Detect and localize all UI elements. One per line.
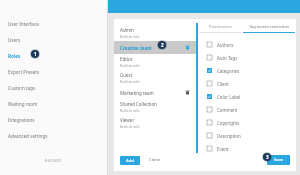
button[interactable]: Export Presets [0, 64, 107, 80]
button[interactable]: Tag access restriction [242, 24, 296, 33]
staticText: Authors [217, 42, 234, 48]
button[interactable]: Categories [198, 64, 296, 77]
staticText: Color Label [217, 94, 241, 100]
button[interactable]: Delete role [184, 89, 191, 96]
button[interactable]: Copyrights [198, 116, 296, 129]
button[interactable]: Editor [114, 54, 196, 70]
staticText: Permissions [209, 24, 232, 29]
button[interactable]: Add [120, 156, 140, 165]
staticText: Client [217, 81, 229, 87]
staticText: Categories [217, 68, 240, 74]
staticText: Marketing team [120, 90, 154, 96]
button[interactable]: Delete role [184, 44, 191, 51]
button[interactable]: Shared Collection [114, 99, 196, 115]
staticText: User Interface [8, 21, 39, 27]
staticText: Roles [8, 53, 21, 59]
staticText: Users [8, 37, 21, 43]
staticText: Description [217, 133, 241, 139]
button[interactable]: Clone [147, 156, 163, 164]
staticText: Tag access restriction [249, 24, 290, 29]
staticText: Built-in role [120, 79, 140, 84]
staticText: Editor [120, 56, 133, 62]
staticText: Built-in role [120, 124, 140, 129]
staticText: Guest [120, 72, 133, 78]
button[interactable]: Auto Tags [198, 51, 296, 64]
staticText: 1 [34, 51, 37, 57]
button[interactable]: Save [267, 155, 290, 165]
staticText: 2 [161, 42, 164, 48]
button[interactable]: Admin [114, 25, 196, 41]
staticText: Copyrights [217, 120, 240, 126]
button[interactable]: Roles [0, 48, 107, 64]
button[interactable]: Authors [198, 38, 296, 51]
button[interactable]: Marketing team [114, 86, 196, 99]
button[interactable]: Users [0, 32, 107, 48]
button[interactable]: Integrations [0, 112, 107, 128]
button[interactable]: Comment [198, 103, 296, 116]
staticText: Advanced settings [8, 133, 48, 139]
staticText: Integrations [8, 117, 35, 123]
staticText: Waiting room [8, 101, 38, 107]
staticText: Event [217, 146, 229, 152]
button[interactable]: Event [198, 142, 296, 155]
staticText: 8.0.0.3027 [45, 158, 62, 163]
staticText: Creative team [120, 45, 152, 51]
button[interactable]: Color Label [198, 90, 296, 103]
staticText: Add [126, 158, 134, 164]
staticText: Shared Collection [120, 101, 157, 107]
staticText: Comment [217, 107, 238, 113]
staticText: Admin [120, 27, 134, 33]
staticText: Built-in role [120, 63, 140, 68]
button[interactable]: Permissions [198, 24, 242, 33]
staticText: Built-in role [120, 108, 140, 113]
button[interactable]: Guest [114, 70, 196, 86]
button[interactable]: Custom tags [0, 80, 107, 96]
button[interactable]: Client [198, 77, 296, 90]
staticText: Export Presets [8, 69, 40, 75]
button[interactable]: Creative team [114, 41, 196, 54]
staticText: Custom tags [8, 85, 36, 91]
button[interactable]: Waiting room [0, 96, 107, 112]
button[interactable]: Advanced settings [0, 128, 107, 144]
staticText: Viewer [120, 117, 135, 123]
staticText: Built-in role [120, 34, 140, 39]
button[interactable]: User Interface [0, 16, 107, 32]
staticText: Auto Tags [217, 55, 238, 61]
staticText: Save [274, 157, 284, 163]
button[interactable]: Viewer [114, 115, 196, 131]
button[interactable]: Description [198, 129, 296, 142]
staticText: 3 [266, 154, 269, 160]
staticText: Clone [149, 157, 161, 163]
